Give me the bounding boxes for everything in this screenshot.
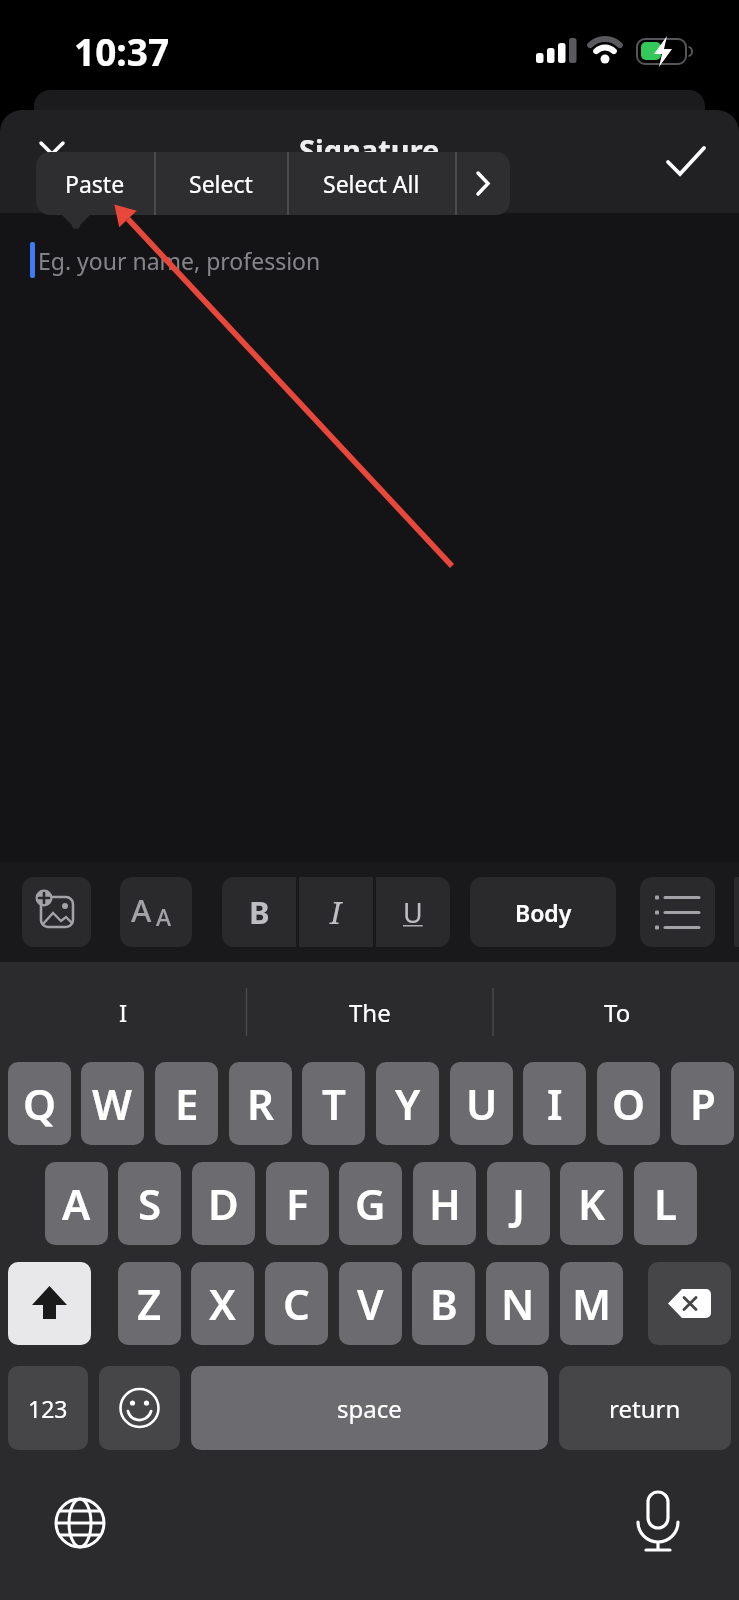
button[interactable]: Select All — [287, 152, 455, 215]
staticText: I — [119, 996, 128, 1029]
staticText: Z — [137, 1275, 162, 1332]
button[interactable]: To — [537, 985, 697, 1039]
button[interactable]: O — [597, 1062, 660, 1145]
button[interactable]: I — [299, 877, 373, 947]
staticText: G — [355, 1175, 386, 1232]
button[interactable] — [39, 141, 67, 169]
button[interactable]: L — [634, 1162, 697, 1245]
staticText: return — [609, 1392, 681, 1425]
staticText: X — [209, 1275, 236, 1332]
button[interactable]: I — [523, 1062, 586, 1145]
staticText: V — [357, 1275, 384, 1332]
button[interactable]: A — [120, 877, 192, 947]
staticText: B — [430, 1275, 458, 1332]
button[interactable]: E — [155, 1062, 218, 1145]
button[interactable]: Z — [118, 1262, 181, 1345]
button[interactable]: space — [191, 1366, 548, 1450]
staticText: O — [612, 1075, 646, 1132]
button[interactable]: K — [560, 1162, 623, 1245]
staticText: C — [283, 1275, 310, 1332]
staticText: To — [604, 996, 631, 1029]
staticText: Eg. your name, profession — [38, 245, 321, 276]
button[interactable]: C — [265, 1262, 328, 1345]
button[interactable] — [22, 877, 91, 947]
button[interactable]: N — [486, 1262, 549, 1345]
staticText: K — [578, 1175, 606, 1232]
button[interactable]: V — [339, 1262, 402, 1345]
staticText: Select — [189, 168, 253, 199]
button[interactable]: Y — [376, 1062, 439, 1145]
staticText: 10:37 — [74, 26, 170, 70]
staticText: A — [156, 901, 172, 932]
button[interactable] — [630, 1490, 686, 1556]
staticText: U — [466, 1075, 498, 1132]
staticText: Paste — [65, 168, 125, 199]
button[interactable]: Select — [154, 152, 287, 215]
button[interactable]: W — [81, 1062, 144, 1145]
button[interactable] — [457, 152, 510, 215]
staticText: Select All — [323, 168, 420, 199]
button[interactable]: U — [450, 1062, 513, 1145]
button[interactable]: B — [412, 1262, 475, 1345]
staticText: M — [572, 1275, 612, 1332]
button[interactable]: Paste — [36, 152, 154, 215]
button[interactable]: J — [487, 1162, 550, 1245]
button[interactable]: I — [43, 985, 203, 1039]
staticText: Q — [23, 1075, 57, 1132]
staticText: space — [337, 1392, 402, 1425]
button[interactable]: H — [413, 1162, 476, 1245]
staticText: D — [208, 1175, 239, 1232]
button[interactable]: Q — [8, 1062, 71, 1145]
staticText: Y — [395, 1075, 421, 1132]
button[interactable]: S — [118, 1162, 181, 1245]
button[interactable] — [52, 1495, 108, 1551]
staticText: A — [131, 889, 152, 931]
staticText: A — [62, 1175, 91, 1232]
staticText: I — [547, 1075, 563, 1132]
staticText: N — [501, 1275, 535, 1332]
staticText: J — [512, 1175, 525, 1232]
staticText: W — [92, 1075, 133, 1132]
button[interactable] — [8, 1262, 91, 1345]
button[interactable]: U — [376, 877, 450, 947]
button[interactable] — [99, 1366, 180, 1450]
button[interactable]: R — [229, 1062, 292, 1145]
button[interactable]: Body — [470, 877, 616, 947]
button[interactable]: D — [192, 1162, 255, 1245]
button[interactable]: G — [339, 1162, 402, 1245]
staticText: L — [654, 1175, 677, 1232]
button[interactable]: B — [222, 877, 296, 947]
button[interactable]: P — [671, 1062, 734, 1145]
staticText: F — [286, 1175, 309, 1232]
button[interactable]: F — [266, 1162, 329, 1245]
staticText: T — [322, 1075, 346, 1132]
staticText: U — [403, 894, 423, 931]
staticText: S — [138, 1175, 162, 1232]
button[interactable] — [640, 877, 715, 947]
staticText: E — [175, 1075, 199, 1132]
staticText: 123 — [28, 1393, 68, 1424]
button[interactable] — [648, 1262, 731, 1345]
staticText: R — [247, 1075, 275, 1132]
staticText: Signature — [299, 130, 440, 169]
button[interactable] — [662, 140, 710, 182]
staticText: P — [690, 1075, 716, 1132]
button[interactable]: return — [559, 1366, 731, 1450]
button[interactable]: The — [290, 985, 450, 1039]
button[interactable]: A — [45, 1162, 108, 1245]
button[interactable]: 123 — [8, 1366, 88, 1450]
staticText: H — [429, 1175, 461, 1232]
staticText: Body — [515, 897, 572, 928]
button[interactable]: T — [302, 1062, 365, 1145]
staticText: I — [330, 891, 342, 933]
staticText: B — [249, 891, 270, 933]
staticText: The — [349, 996, 391, 1029]
button[interactable]: M — [560, 1262, 623, 1345]
button[interactable]: X — [191, 1262, 254, 1345]
